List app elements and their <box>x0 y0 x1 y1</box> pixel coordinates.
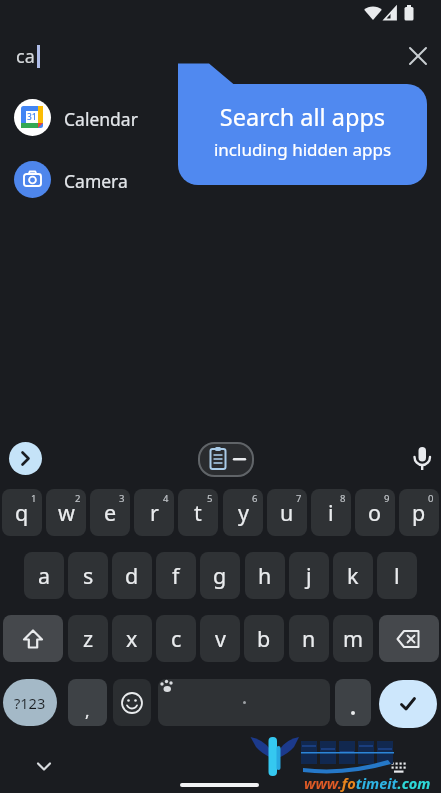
staticText: y <box>238 498 249 527</box>
staticText: 6 <box>252 492 258 505</box>
button[interactable]: o <box>355 489 395 536</box>
staticText: b <box>257 624 271 653</box>
staticText: 2 <box>75 492 81 505</box>
staticText: w <box>58 498 75 527</box>
button[interactable] <box>379 615 439 662</box>
staticText: 5 <box>207 492 213 505</box>
staticText: g <box>213 561 227 590</box>
button[interactable] <box>335 679 371 726</box>
staticText: m <box>343 624 364 653</box>
staticText: , <box>85 699 90 722</box>
staticText: 4 <box>163 492 169 505</box>
button[interactable] <box>158 679 330 726</box>
button[interactable]: r <box>134 489 174 536</box>
button[interactable]: m <box>333 615 373 662</box>
staticText: 31 <box>27 111 37 123</box>
staticText: u <box>280 498 294 527</box>
staticText: ca <box>16 44 35 69</box>
staticText: p <box>412 498 426 527</box>
staticText: k <box>347 561 359 590</box>
button[interactable]: q <box>2 489 42 536</box>
button[interactable]: , <box>68 679 107 726</box>
button[interactable] <box>113 679 151 726</box>
staticText: 7 <box>296 492 302 505</box>
staticText: Search all apps <box>178 101 427 133</box>
button[interactable]: f <box>156 552 196 599</box>
staticText: z <box>83 624 94 653</box>
staticText: e <box>104 498 117 527</box>
staticText: d <box>125 561 139 590</box>
button[interactable] <box>9 442 42 475</box>
button[interactable]: j <box>289 552 329 599</box>
button[interactable]: n <box>289 615 329 662</box>
button[interactable]: Search all apps <box>178 84 427 185</box>
staticText: 9 <box>384 492 390 505</box>
button[interactable]: s <box>68 552 108 599</box>
staticText: h <box>258 561 272 590</box>
staticText: Camera <box>64 169 128 193</box>
button[interactable] <box>402 40 434 72</box>
staticText: a <box>38 561 51 590</box>
staticText: l <box>394 561 400 590</box>
button[interactable] <box>3 615 63 662</box>
button[interactable]: v <box>200 615 240 662</box>
button[interactable] <box>379 680 437 728</box>
staticText: f <box>172 561 180 590</box>
staticText: s <box>83 561 94 590</box>
staticText: 3 <box>119 492 125 505</box>
staticText: c <box>171 624 182 653</box>
staticText: r <box>150 498 159 527</box>
button[interactable]: k <box>333 552 373 599</box>
staticText: o <box>368 498 382 527</box>
staticText: n <box>302 624 316 653</box>
button[interactable]: g <box>200 552 240 599</box>
button[interactable]: b <box>244 615 284 662</box>
staticText: q <box>15 498 29 527</box>
button[interactable]: z <box>68 615 108 662</box>
staticText: i <box>328 498 334 527</box>
button[interactable]: y <box>223 489 263 536</box>
button[interactable]: 31 <box>0 95 175 139</box>
button[interactable]: p <box>399 489 439 536</box>
staticText: v <box>215 624 226 653</box>
staticText: x <box>126 624 138 653</box>
button[interactable] <box>408 440 436 476</box>
button[interactable]: e <box>90 489 130 536</box>
button[interactable]: w <box>46 489 86 536</box>
button[interactable]: a <box>24 552 64 599</box>
button[interactable]: c <box>156 615 196 662</box>
button[interactable]: h <box>245 552 285 599</box>
staticText: including hidden apps <box>178 138 427 161</box>
staticText: j <box>306 561 312 590</box>
button[interactable]: x <box>112 615 152 662</box>
button[interactable]: Camera <box>0 157 175 201</box>
button[interactable]: ?123 <box>3 679 57 726</box>
button[interactable] <box>198 442 254 477</box>
staticText: 0 <box>428 492 434 505</box>
staticText: Calendar <box>64 107 138 131</box>
button[interactable]: u <box>267 489 307 536</box>
button[interactable] <box>386 756 410 778</box>
button[interactable]: l <box>377 552 417 599</box>
staticText: www.fotimeit.com <box>304 773 431 793</box>
button[interactable]: d <box>112 552 152 599</box>
button[interactable]: t <box>178 489 218 536</box>
button[interactable]: i <box>311 489 351 536</box>
staticText: 1 <box>31 492 37 505</box>
staticText: ?123 <box>14 693 46 713</box>
staticText: t <box>194 498 202 527</box>
staticText: 8 <box>340 492 346 505</box>
button[interactable] <box>30 754 58 778</box>
